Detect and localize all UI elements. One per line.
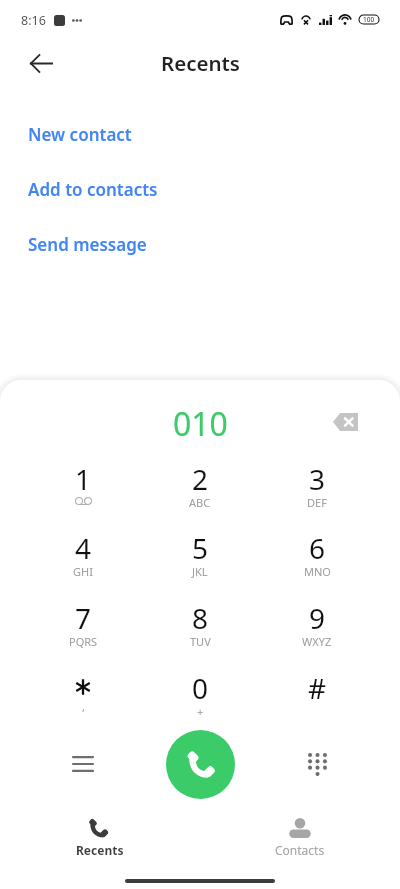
- staticText: 5: [192, 529, 209, 567]
- button[interactable]: Add to contacts: [0, 162, 400, 217]
- button[interactable]: Call: [166, 730, 235, 799]
- staticText: 7: [75, 599, 92, 637]
- staticText: 100: [363, 15, 375, 24]
- button[interactable]: 6: [272, 529, 362, 587]
- button[interactable]: Back: [19, 41, 63, 85]
- staticText: TUV: [190, 634, 211, 649]
- staticText: JKL: [192, 564, 208, 579]
- button[interactable]: 0: [155, 669, 245, 727]
- staticText: 4: [75, 529, 92, 567]
- button[interactable]: 1: [38, 460, 128, 518]
- staticText: GHI: [73, 564, 93, 579]
- staticText: Contacts: [275, 842, 325, 858]
- button[interactable]: Send message: [0, 217, 400, 272]
- staticText: ABC: [189, 495, 211, 510]
- button[interactable]: Call log options: [59, 740, 107, 788]
- button[interactable]: 8: [155, 599, 245, 657]
- button[interactable]: #: [272, 669, 362, 727]
- button[interactable]: Backspace: [323, 400, 367, 444]
- staticText: New contact: [28, 123, 132, 146]
- staticText: DEF: [307, 495, 327, 510]
- staticText: MNO: [304, 564, 331, 579]
- staticText: #: [308, 669, 327, 707]
- button[interactable]: 3: [272, 460, 362, 518]
- button[interactable]: 9: [272, 599, 362, 657]
- staticText: +: [197, 704, 204, 719]
- staticText: WXYZ: [302, 634, 332, 649]
- button[interactable]: 7: [38, 599, 128, 657]
- staticText: Recents: [161, 49, 240, 77]
- staticText: 0: [192, 669, 209, 707]
- button[interactable]: ,: [38, 669, 128, 727]
- staticText: Add to contacts: [28, 178, 158, 201]
- staticText: 1: [75, 460, 92, 498]
- staticText: PQRS: [69, 634, 98, 649]
- button[interactable]: Recents: [50, 806, 150, 862]
- button[interactable]: 2: [155, 460, 245, 518]
- staticText: Send message: [28, 233, 147, 256]
- button[interactable]: Contacts: [250, 806, 350, 862]
- button[interactable]: 4: [38, 529, 128, 587]
- staticText: 010: [173, 402, 228, 446]
- staticText: 2: [192, 460, 209, 498]
- staticText: ,: [82, 699, 85, 714]
- button[interactable]: Dialpad: [293, 740, 341, 788]
- staticText: Recents: [76, 842, 124, 858]
- staticText: 8:16: [21, 12, 46, 29]
- staticText: 3: [309, 460, 326, 498]
- staticText: 8: [192, 599, 209, 637]
- button[interactable]: 5: [155, 529, 245, 587]
- button[interactable]: New contact: [0, 107, 400, 162]
- staticText: 6: [309, 529, 326, 567]
- staticText: 9: [309, 599, 326, 637]
